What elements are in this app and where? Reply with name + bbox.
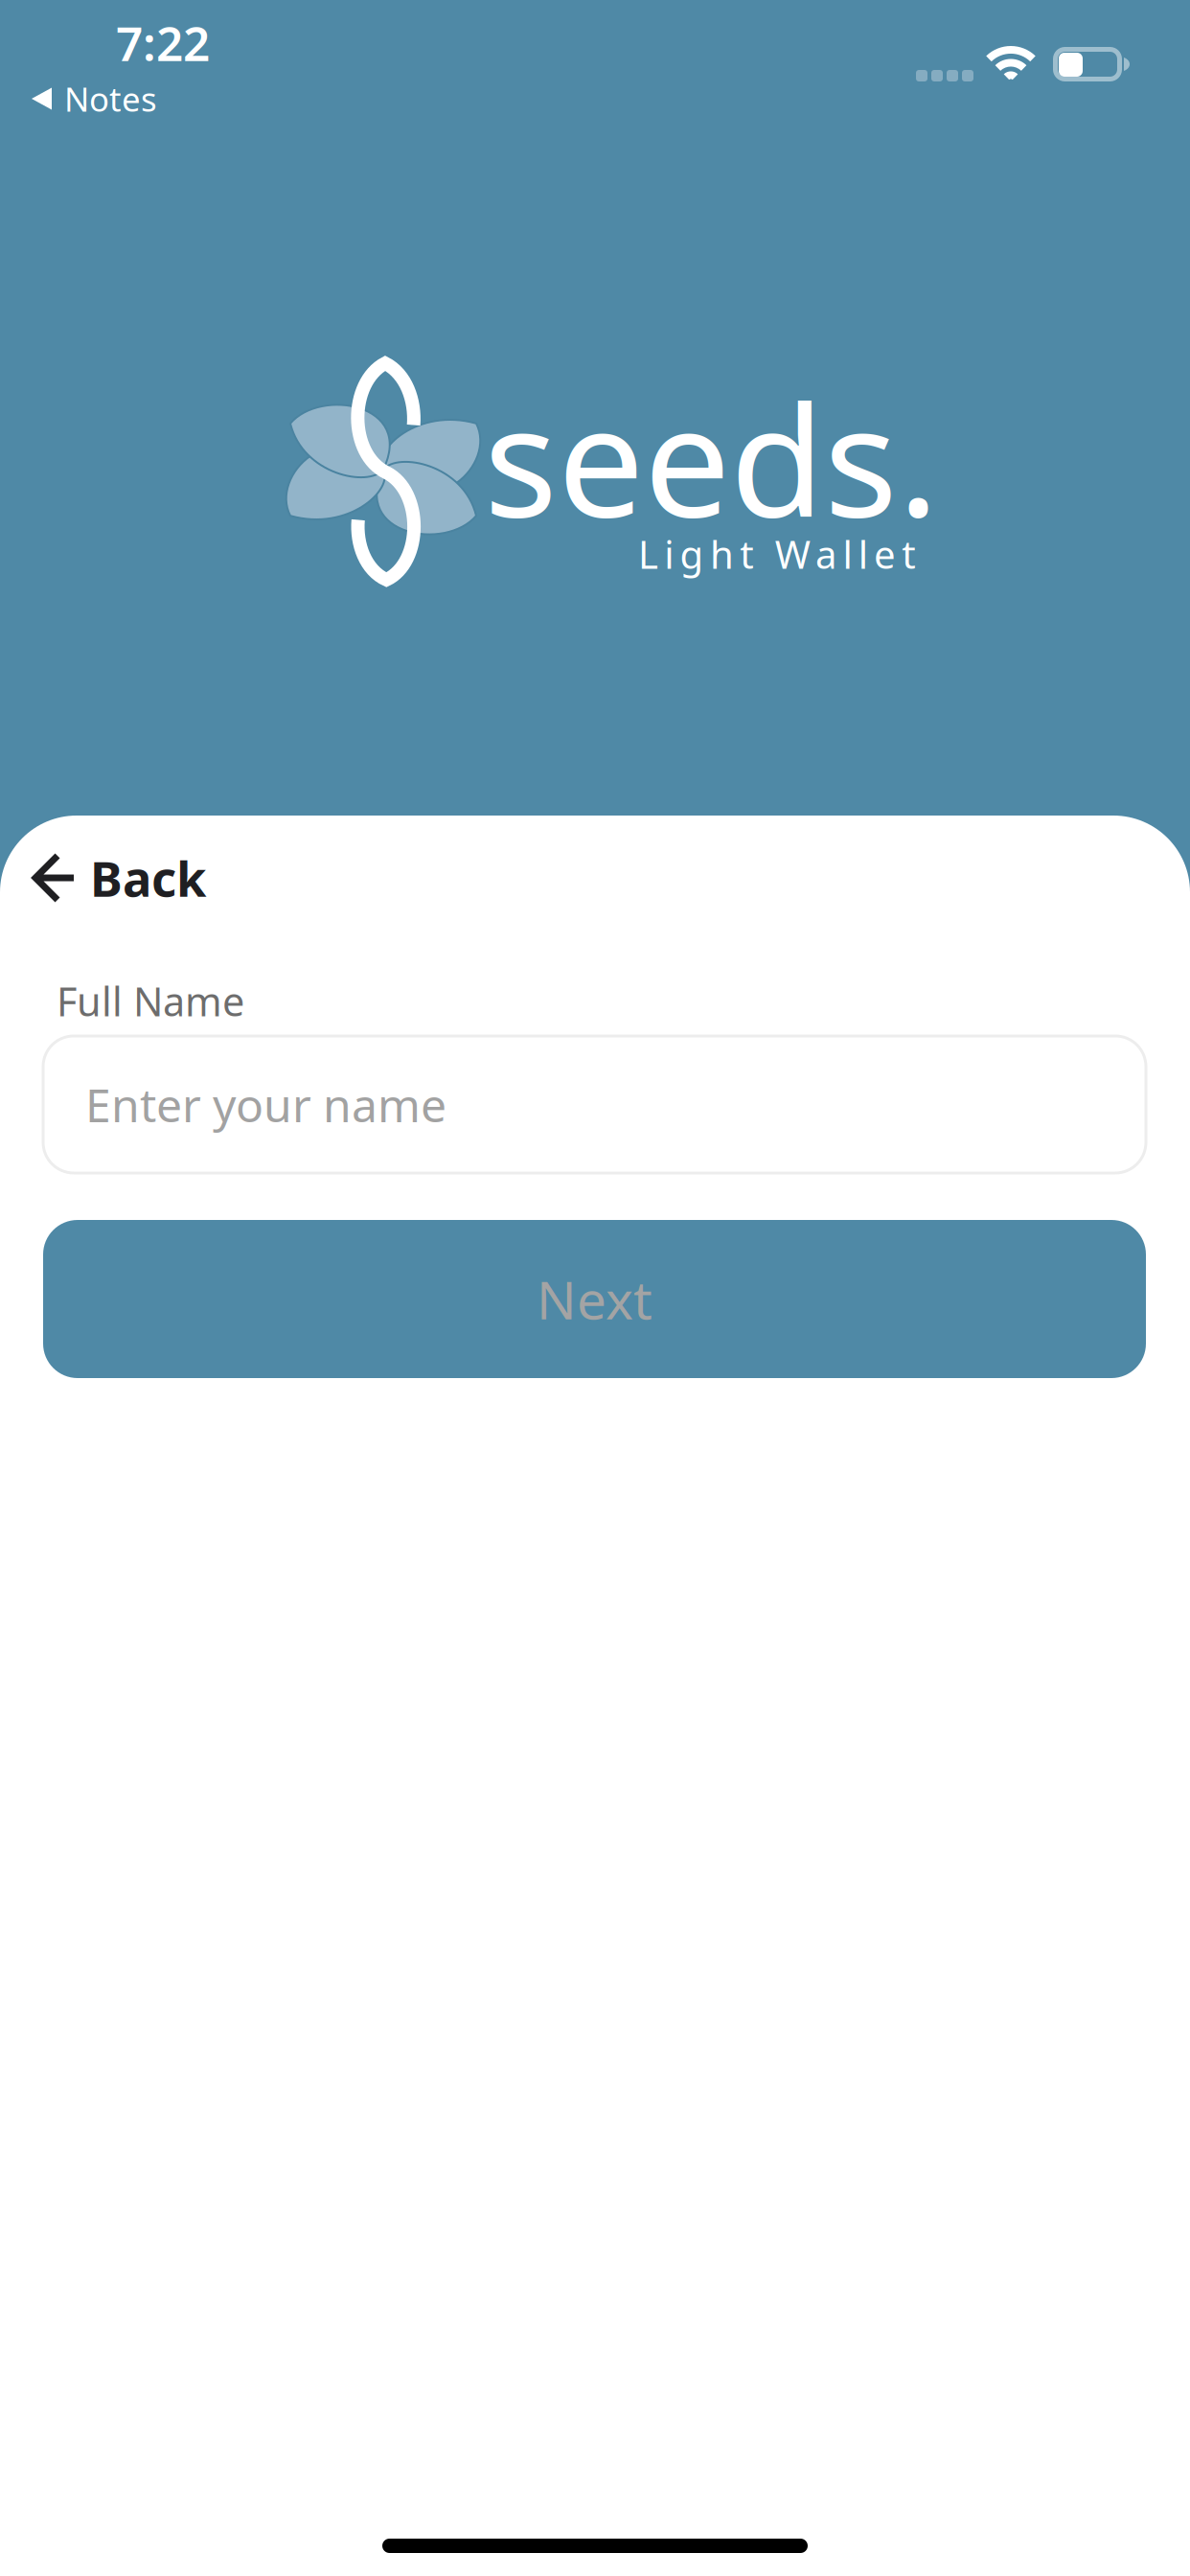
staticText: Notes	[64, 77, 157, 121]
staticText: Light Wallet	[638, 528, 915, 579]
button[interactable]: Back	[35, 835, 352, 921]
button[interactable]: Next	[43, 1220, 1146, 1378]
staticText: Enter your name	[85, 1074, 446, 1135]
staticText: Next	[537, 1264, 652, 1334]
staticText: 7:22	[116, 11, 210, 74]
staticText: Full Name	[57, 975, 244, 1027]
staticText: Back	[90, 846, 206, 910]
staticText: seeds.	[484, 355, 939, 559]
button[interactable]: Notes	[32, 77, 185, 121]
